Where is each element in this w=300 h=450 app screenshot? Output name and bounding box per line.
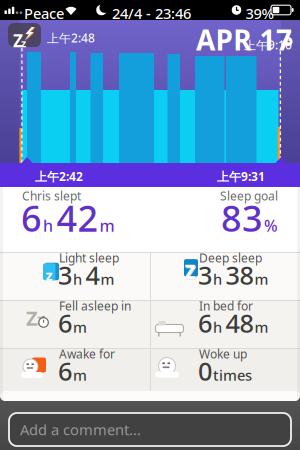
- staticText: 39%: [245, 3, 273, 23]
- staticText: z: [37, 311, 44, 328]
- staticText: Z: [13, 29, 23, 52]
- staticText: Z: [185, 260, 196, 285]
- staticText: Deep sleep: [199, 250, 262, 266]
- staticText: 上午9:10: [244, 37, 292, 53]
- staticText: 上午2:48: [47, 30, 95, 46]
- button[interactable]: Add a comment: [9, 413, 291, 446]
- staticText: APR 17: [196, 21, 292, 58]
- staticText: m: [100, 269, 114, 289]
- staticText: h: [213, 269, 222, 289]
- button[interactable]: Sleep mode: [8, 23, 41, 47]
- staticText: Add a comment...: [20, 420, 141, 439]
- staticText: times: [213, 365, 252, 385]
- staticText: Fell asleep in: [59, 298, 131, 314]
- staticText: m: [99, 215, 114, 236]
- staticText: 3: [58, 258, 72, 292]
- staticText: 0: [198, 354, 212, 388]
- staticText: 3: [198, 258, 212, 292]
- staticText: m: [73, 365, 87, 385]
- staticText: h: [43, 215, 53, 236]
- staticText: 上午2:42: [35, 168, 83, 184]
- staticText: 上午9:31: [217, 168, 265, 184]
- staticText: Z: [26, 305, 38, 331]
- staticText: 38: [225, 258, 253, 292]
- staticText: 6: [198, 306, 212, 340]
- staticText: Awake for: [59, 346, 115, 362]
- staticText: h: [73, 269, 82, 289]
- staticText: m: [254, 269, 268, 289]
- staticText: 48: [225, 306, 253, 340]
- staticText: 42: [56, 194, 98, 242]
- staticText: 83: [221, 194, 263, 242]
- staticText: 6: [58, 354, 72, 388]
- staticText: z: [21, 36, 26, 50]
- staticText: Chris slept: [22, 188, 81, 204]
- staticText: 4: [85, 258, 99, 292]
- staticText: z: [45, 265, 52, 285]
- staticText: Woke up: [199, 346, 247, 362]
- staticText: m: [73, 317, 87, 337]
- staticText: m: [254, 317, 268, 337]
- staticText: %: [264, 215, 278, 236]
- staticText: 6: [21, 194, 42, 242]
- staticText: Peace: [24, 3, 64, 23]
- button[interactable]: APR 17: [172, 21, 292, 58]
- staticText: 24/4 - 23:46: [112, 3, 191, 23]
- staticText: Z: [184, 259, 195, 284]
- staticText: In bed for: [199, 298, 253, 314]
- staticText: 6: [58, 306, 72, 340]
- staticText: Sleep goal: [220, 188, 278, 204]
- staticText: h: [213, 317, 222, 337]
- staticText: Light sleep: [59, 250, 119, 266]
